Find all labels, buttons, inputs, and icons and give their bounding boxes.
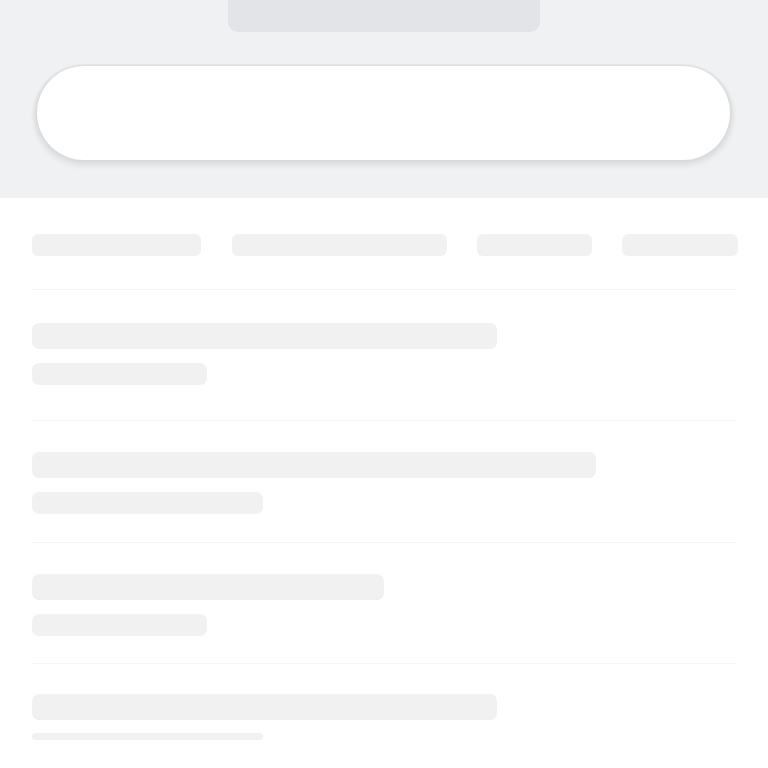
button[interactable] [0, 290, 768, 420]
button[interactable]: Search [37, 66, 730, 160]
button[interactable] [0, 543, 768, 663]
button[interactable] [0, 664, 768, 768]
button[interactable] [0, 421, 768, 542]
